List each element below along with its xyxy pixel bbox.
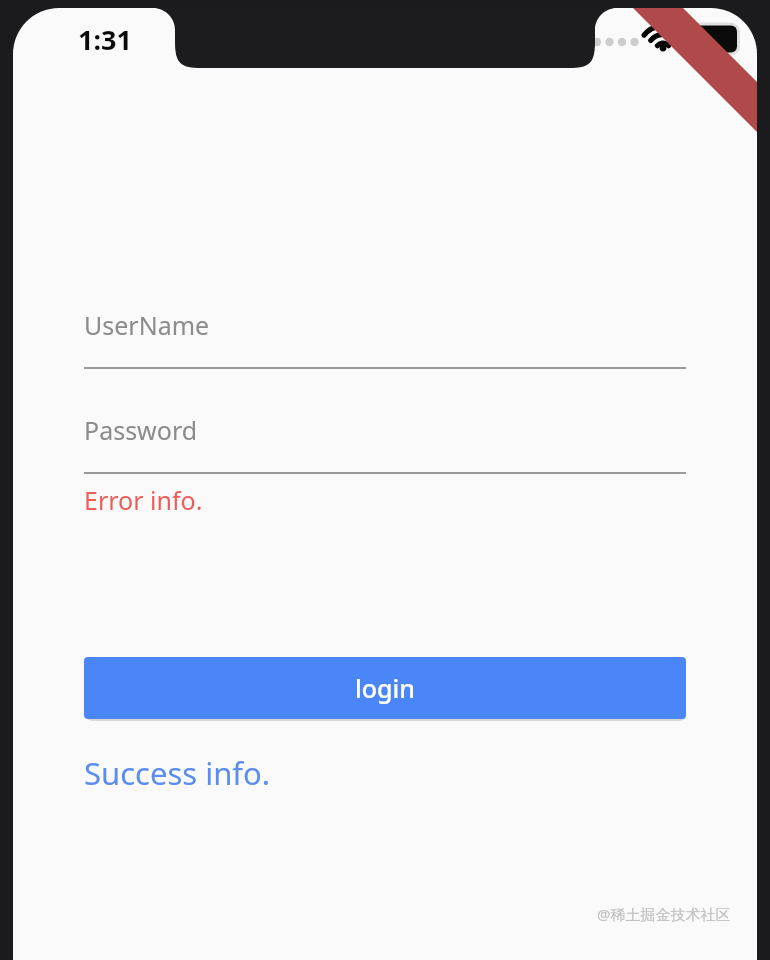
staticText: Success info.: [84, 752, 271, 794]
staticText: login: [355, 671, 415, 705]
button[interactable]: UserName: [13, 308, 757, 369]
staticText: @稀土掘金技术社区: [597, 904, 731, 924]
staticText: UserName: [84, 308, 210, 342]
staticText: Error info.: [84, 483, 203, 517]
staticText: Password: [84, 413, 198, 447]
staticText: 1:31: [78, 21, 132, 58]
button[interactable]: login: [84, 657, 686, 719]
button[interactable]: Password: [13, 413, 757, 474]
other: Status icons: [591, 19, 741, 59]
